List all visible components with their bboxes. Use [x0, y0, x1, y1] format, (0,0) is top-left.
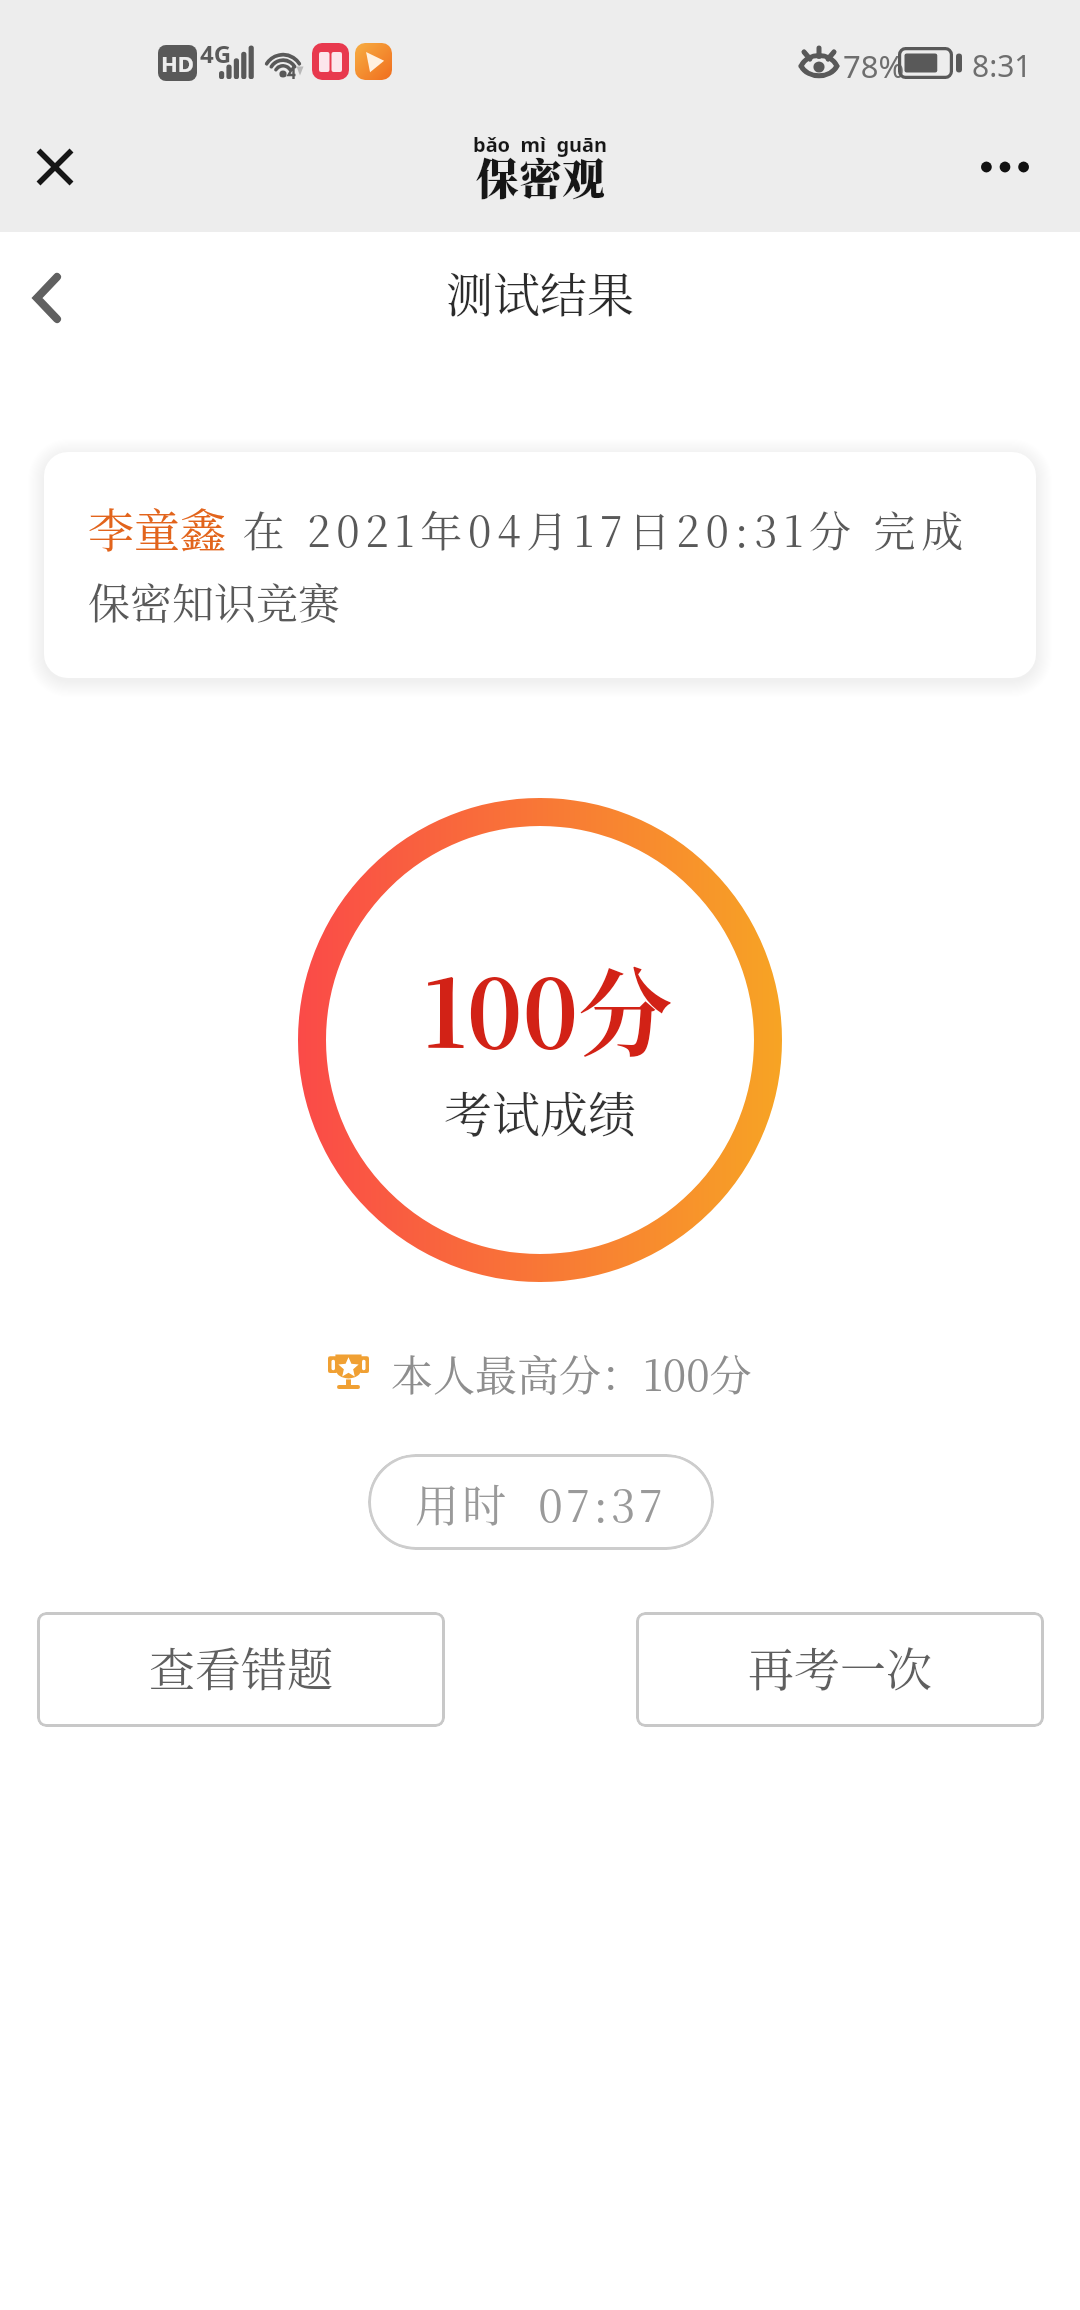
- button[interactable]: 用时 07:37: [368, 1454, 714, 1550]
- button[interactable]: 查看错题: [37, 1612, 445, 1727]
- staticText: 本人最高分：100分: [391, 1343, 752, 1403]
- button[interactable]: Close: [15, 128, 94, 206]
- staticText: 4G: [200, 37, 232, 70]
- staticText: 保密观: [476, 146, 605, 208]
- staticText: 测试结果: [446, 258, 634, 326]
- staticText: 8:31: [972, 45, 1032, 86]
- button[interactable]: 再考一次: [636, 1612, 1044, 1727]
- staticText: bǎo mì guān: [473, 131, 608, 158]
- staticText: 78%: [843, 45, 905, 87]
- staticText: 李童鑫 在 2021年04月17日20:31分 完成 保密知识竞赛: [88, 494, 998, 631]
- staticText: 100分: [423, 940, 673, 1075]
- button[interactable]: Back: [5, 256, 89, 340]
- button[interactable]: More options: [960, 130, 1050, 204]
- staticText: 考试成绩: [444, 1077, 637, 1146]
- staticText: HD: [161, 48, 194, 78]
- staticText: 再考一次: [748, 1633, 932, 1699]
- staticText: 查看错题: [149, 1633, 333, 1699]
- staticText: 用时 07:37: [415, 1471, 667, 1534]
